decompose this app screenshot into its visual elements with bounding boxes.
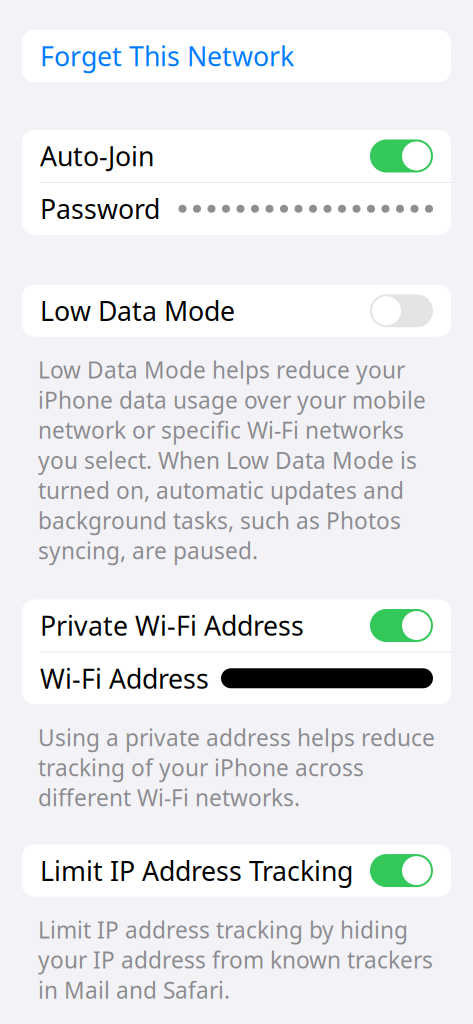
staticText: Limit IP address tracking by hiding your…	[38, 915, 433, 1005]
staticText: Private Wi-Fi Address	[40, 608, 304, 643]
staticText: Wi-Fi Address	[40, 661, 209, 696]
button[interactable]: Limit IP Address Tracking	[22, 845, 451, 897]
staticText: Forget This Network	[40, 38, 294, 74]
button[interactable]: Forget This Network	[22, 30, 451, 82]
staticText: Password	[40, 191, 160, 226]
button[interactable]: Wi-Fi Address	[22, 652, 451, 704]
button[interactable]: Low Data Mode	[22, 285, 451, 337]
button[interactable]: Private Wi-Fi Address	[22, 599, 451, 651]
button[interactable]: Password	[22, 183, 451, 235]
staticText: Using a private address helps reduce tra…	[38, 722, 435, 813]
staticText: Limit IP Address Tracking	[40, 853, 353, 888]
staticText: Low Data Mode	[40, 293, 235, 328]
staticText: Low Data Mode helps reduce your iPhone d…	[38, 355, 426, 565]
staticText: Auto-Join	[40, 138, 154, 174]
button[interactable]: Auto-Join	[22, 130, 451, 182]
